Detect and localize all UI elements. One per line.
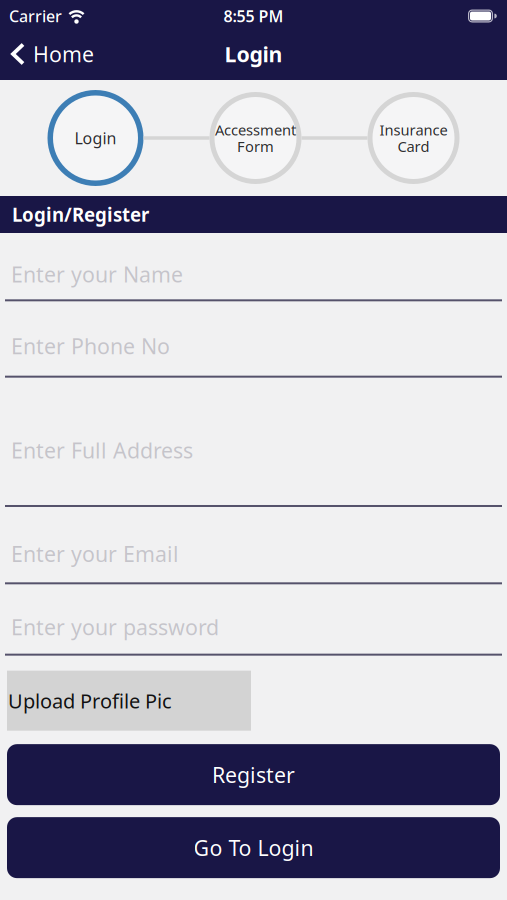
staticText: 8:55 PM: [223, 5, 283, 27]
staticText: Home: [33, 40, 94, 68]
staticText: Go To Login: [193, 833, 313, 862]
staticText: Login/Register: [12, 202, 149, 227]
staticText: Insurance: [379, 120, 447, 139]
button[interactable]: Back: [0, 40, 94, 68]
staticText: Login: [74, 127, 116, 149]
staticText: Enter Phone No: [11, 332, 170, 360]
staticText: Carrier: [9, 5, 62, 27]
staticText: Enter your Email: [11, 539, 179, 568]
staticText: Form: [237, 136, 274, 156]
button[interactable]: Upload Profile Pic: [7, 671, 251, 731]
staticText: Accessment: [215, 120, 296, 139]
staticText: Card: [397, 136, 429, 156]
staticText: Enter your password: [11, 613, 219, 641]
staticText: Enter your Name: [11, 260, 183, 288]
button[interactable]: Go To Login: [7, 817, 500, 878]
staticText: Enter Full Address: [11, 436, 193, 464]
staticText: Upload Profile Pic: [8, 687, 172, 714]
button[interactable]: Register: [7, 744, 500, 805]
staticText: Login: [224, 40, 282, 68]
staticText: Register: [212, 760, 295, 789]
